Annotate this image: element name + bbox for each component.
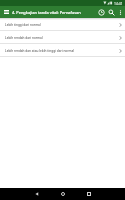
staticText: Lebih rendah dan atau lebih tinggi dari … [5,49,119,53]
staticText: 4. Pengkajian tanda vital: Pernafasan [12,10,96,15]
staticText: Lebih tinggi dari normal [5,23,119,27]
button[interactable]: Navigation menu [0,6,12,18]
button[interactable]: History [96,6,106,18]
button[interactable]: Search [106,6,116,18]
button[interactable]: Back [29,188,44,200]
staticText: 14:41 [114,1,123,6]
button[interactable]: Lebih rendah dari normal [0,31,125,43]
button[interactable]: Home [55,188,70,200]
button[interactable]: Lebih rendah dan atau lebih tinggi dari … [0,44,125,56]
button[interactable]: More options [116,6,125,18]
button[interactable]: Lebih tinggi dari normal [0,18,125,30]
staticText: Lebih rendah dari normal [5,36,119,40]
button[interactable]: Recent apps [81,188,96,200]
